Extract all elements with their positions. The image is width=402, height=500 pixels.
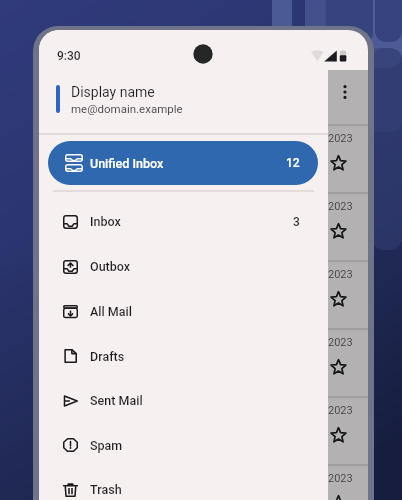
button[interactable]: Trash — [39, 467, 328, 500]
button[interactable]: All Mail — [39, 289, 328, 334]
staticText: Drafts — [90, 349, 328, 364]
staticText: 2023 — [328, 472, 353, 485]
staticText: 2023 — [328, 268, 353, 281]
button[interactable]: Star — [330, 427, 347, 444]
staticText: 12 — [286, 156, 300, 170]
button[interactable]: Drafts — [39, 334, 328, 378]
staticText: Sent Mail — [90, 393, 328, 408]
button[interactable]: Star — [330, 495, 347, 500]
staticText: Display name — [71, 84, 155, 100]
staticText: Inbox — [90, 214, 293, 229]
staticText: me@domain.example — [71, 102, 183, 115]
staticText: 2023 — [328, 200, 353, 213]
button[interactable]: Spam — [39, 423, 328, 467]
button[interactable]: Unified Inbox — [48, 141, 318, 185]
staticText: 2023 — [328, 336, 353, 349]
button[interactable]: Star — [330, 155, 347, 172]
button[interactable]: Inbox — [39, 199, 328, 244]
button[interactable]: Sent Mail — [39, 378, 328, 423]
button[interactable]: Outbox — [39, 244, 328, 289]
staticText: 2023 — [328, 404, 353, 417]
button[interactable]: Star — [330, 223, 347, 240]
staticText: Unified Inbox — [90, 156, 286, 171]
staticText: 2023 — [328, 132, 353, 145]
button[interactable]: Display name — [39, 70, 328, 134]
staticText: 3 — [293, 215, 300, 229]
staticText: All Mail — [90, 304, 328, 319]
button[interactable]: Star — [330, 359, 347, 376]
staticText: Outbox — [90, 259, 328, 274]
button[interactable]: Star — [330, 291, 347, 308]
button[interactable]: More options — [333, 80, 357, 104]
staticText: Spam — [90, 438, 328, 453]
staticText: 9:30 — [57, 49, 81, 63]
staticText: Trash — [90, 482, 328, 497]
